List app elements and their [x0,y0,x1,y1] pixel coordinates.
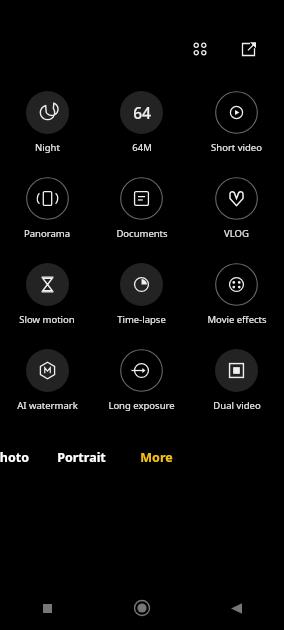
button[interactable]: Night [0,91,94,154]
button[interactable]: Long exposure [94,349,189,412]
button[interactable]: AI watermark [0,349,94,412]
button[interactable]: 64 [94,91,189,154]
staticText: Night [35,141,60,154]
staticText: Documents [116,227,168,240]
button[interactable]: Home [94,586,189,630]
staticText: Photo [0,449,29,466]
button[interactable]: Photo [0,445,33,470]
button[interactable]: Documents [94,177,189,240]
button[interactable]: Edit modes [232,33,264,65]
staticText: 64 [133,102,151,123]
button[interactable]: Portrait [53,445,110,470]
button[interactable]: Movie effects [189,263,284,326]
staticText: 64M [132,141,152,154]
staticText: Dual video [213,399,261,412]
button[interactable]: Time-lapse [94,263,189,326]
button[interactable]: Dual video [189,349,284,412]
staticText: VLOG [224,227,249,240]
staticText: Portrait [57,449,106,466]
staticText: More [140,449,173,466]
staticText: Panorama [24,227,70,240]
staticText: Long exposure [108,399,175,412]
button[interactable]: Short video [189,91,284,154]
staticText: Movie effects [207,313,267,326]
button[interactable]: Back [189,586,284,630]
button[interactable]: VLOG [189,177,284,240]
button[interactable]: Recent apps [0,586,94,630]
staticText: AI watermark [17,399,78,412]
button[interactable]: Slow motion [0,263,94,326]
staticText: Slow motion [19,313,75,326]
staticText: Time-lapse [117,313,166,326]
staticText: Short video [211,141,262,154]
button[interactable]: More [136,445,177,470]
button[interactable]: Camera modes grid [184,33,216,65]
button[interactable]: Panorama [0,177,94,240]
